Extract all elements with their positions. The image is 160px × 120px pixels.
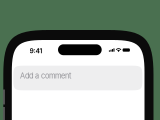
button[interactable]: Add a comment <box>13 66 142 90</box>
staticText: Add a comment <box>20 71 71 80</box>
staticText: 9:41 <box>30 47 43 55</box>
